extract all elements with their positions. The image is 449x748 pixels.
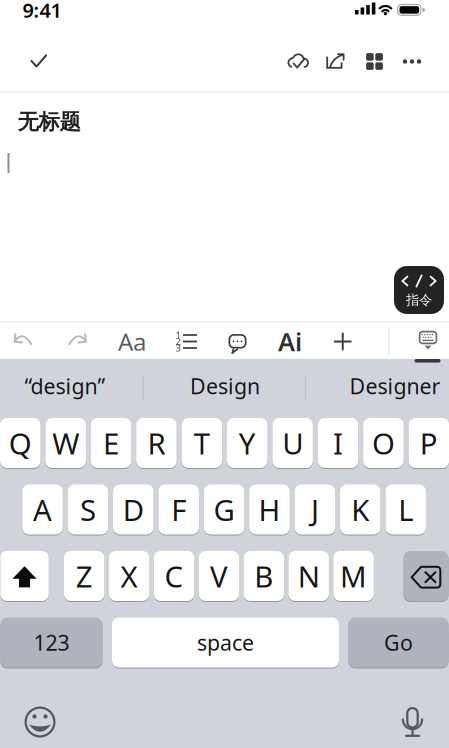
button[interactable]: Y (227, 417, 267, 469)
staticText: K (351, 490, 369, 529)
button[interactable]: V (199, 550, 239, 602)
button[interactable]: I (318, 417, 358, 469)
staticText: Ai (278, 325, 302, 358)
button[interactable]: J (295, 483, 335, 535)
staticText: Z (76, 556, 93, 595)
staticText: C (164, 556, 183, 595)
button[interactable]: Undo (10, 329, 36, 353)
button[interactable]: X (109, 550, 149, 602)
button[interactable]: Text format (115, 328, 149, 354)
button[interactable]: O (363, 417, 404, 469)
button[interactable]: Hide keyboard (415, 327, 441, 353)
staticText: W (52, 423, 79, 462)
staticText: O (372, 423, 395, 462)
button[interactable]: B (244, 550, 284, 602)
staticText: R (147, 423, 165, 462)
button[interactable]: “design” (0, 364, 135, 408)
staticText: E (103, 423, 119, 462)
staticText: Designer (349, 372, 440, 400)
button[interactable]: C (154, 550, 194, 602)
staticText: 无标题 (17, 109, 80, 135)
staticText: L (398, 490, 413, 529)
staticText: T (194, 423, 210, 462)
button[interactable]: space (112, 616, 339, 668)
button[interactable]: Emoji (24, 706, 55, 737)
staticText: Y (239, 423, 256, 462)
button[interactable]: G (204, 483, 244, 535)
staticText: Go (384, 628, 413, 657)
staticText: F (171, 490, 186, 529)
staticText: S (80, 490, 96, 529)
button[interactable]: T (182, 417, 222, 469)
staticText: D (123, 490, 144, 529)
staticText: M (340, 556, 367, 595)
button[interactable]: L (385, 483, 426, 535)
staticText: H (258, 490, 280, 529)
button[interactable]: Overview (361, 48, 387, 74)
button[interactable]: Share (321, 47, 349, 75)
staticText: A (33, 490, 52, 529)
staticText: J (311, 490, 319, 529)
button[interactable]: 指令 (394, 266, 444, 314)
button[interactable]: Comment (225, 330, 249, 354)
button[interactable]: Z (64, 550, 104, 602)
button[interactable]: S (68, 483, 108, 535)
button[interactable]: Lists (174, 329, 200, 353)
button[interactable]: Sync (284, 47, 312, 75)
staticText: G (214, 490, 235, 529)
button[interactable]: Insert (330, 328, 356, 354)
staticText: Q (9, 423, 32, 462)
button[interactable]: D (113, 483, 154, 535)
button[interactable]: AI assistant (275, 328, 305, 354)
button[interactable]: W (45, 417, 86, 469)
button[interactable]: 123 (0, 616, 102, 668)
staticText: B (254, 556, 273, 595)
staticText: U (282, 423, 303, 462)
button[interactable]: F (158, 483, 199, 535)
button[interactable]: Done (23, 46, 53, 76)
staticText: N (298, 556, 320, 595)
staticText: I (333, 423, 343, 462)
staticText: 9:41 (22, 0, 61, 23)
button[interactable]: Q (0, 417, 40, 469)
staticText: 3 (175, 342, 180, 354)
button[interactable]: M (333, 550, 374, 602)
button[interactable]: Shift (0, 550, 49, 602)
staticText: V (210, 556, 228, 595)
button[interactable]: Designer (325, 364, 449, 408)
staticText: Design (190, 372, 260, 400)
staticText: space (197, 628, 254, 657)
button[interactable]: P (409, 417, 449, 469)
button[interactable]: Delete (403, 550, 448, 602)
button[interactable]: Go (348, 616, 448, 668)
staticText: Aa (118, 326, 146, 357)
button[interactable]: K (340, 483, 381, 535)
staticText: “design” (24, 372, 105, 400)
button[interactable]: A (22, 483, 63, 535)
button[interactable]: Dictate (396, 703, 429, 739)
button[interactable]: More (398, 48, 426, 74)
button[interactable]: N (288, 550, 329, 602)
staticText: 123 (33, 628, 69, 657)
button[interactable]: Design (155, 364, 295, 408)
staticText: 指令 (406, 292, 432, 308)
staticText: 2 (175, 335, 180, 348)
button[interactable]: H (249, 483, 290, 535)
button[interactable]: E (91, 417, 131, 469)
button[interactable]: Redo (64, 329, 90, 353)
button[interactable]: U (272, 417, 313, 469)
staticText: P (420, 423, 438, 462)
staticText: 1 (175, 329, 180, 341)
button[interactable]: R (136, 417, 177, 469)
staticText: X (121, 556, 138, 595)
